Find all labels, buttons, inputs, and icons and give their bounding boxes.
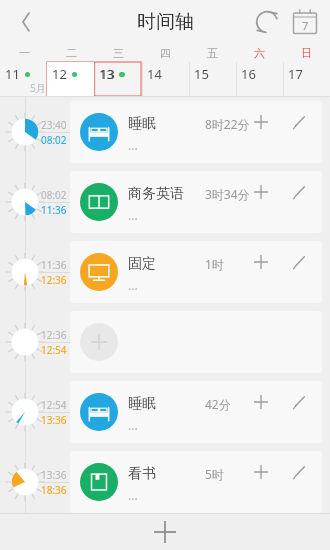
button[interactable]: 17 [283, 62, 330, 96]
button[interactable]: Add [248, 389, 274, 415]
staticText: 15 [194, 65, 209, 83]
button[interactable]: 睡眠 [70, 381, 322, 443]
staticText: 5时 [205, 466, 224, 482]
staticText: 日 [301, 46, 312, 60]
staticText: 12 [53, 65, 68, 83]
staticText: 12:36 [41, 328, 67, 342]
button[interactable]: Add [248, 249, 274, 275]
staticText: 一 [19, 46, 30, 60]
staticText: 23:40 [41, 118, 67, 132]
button[interactable]: 14 [142, 62, 189, 96]
staticText: 固定 [128, 255, 156, 273]
button[interactable]: 商务英语 [70, 171, 322, 233]
button[interactable] [70, 311, 322, 373]
staticText: 08:02 [41, 188, 67, 202]
staticText: 8时22分 [205, 116, 250, 132]
staticText: 18:36 [41, 483, 67, 497]
button[interactable]: 12 [48, 62, 95, 96]
staticText: 42分 [205, 396, 231, 412]
staticText: 三 [113, 46, 124, 60]
staticText: 13:36 [41, 413, 67, 427]
staticText: 商务英语 [128, 185, 184, 203]
staticText: ... [128, 487, 138, 503]
staticText: 看书 [128, 465, 156, 483]
staticText: 08:02 [41, 133, 67, 147]
button[interactable]: Add [248, 179, 274, 205]
button[interactable]: 看书 [70, 451, 322, 513]
staticText: ... [128, 137, 138, 153]
button[interactable]: 11 [0, 62, 48, 96]
button[interactable]: Add entry [0, 513, 330, 550]
button[interactable]: Add [248, 109, 274, 135]
staticText: 睡眠 [128, 395, 156, 413]
staticText: 1时 [205, 256, 224, 272]
button[interactable]: 固定 [70, 241, 322, 303]
button[interactable]: Calendar [286, 3, 324, 41]
staticText: 3时34分 [205, 186, 250, 202]
button[interactable]: 16 [236, 62, 283, 96]
staticText: 16 [241, 65, 256, 83]
staticText: 六 [254, 46, 265, 60]
staticText: 13 [99, 65, 114, 83]
button[interactable]: ... [70, 521, 322, 546]
button[interactable]: Edit [286, 389, 312, 415]
staticText: 睡眠 [128, 115, 156, 133]
button[interactable]: Back [8, 4, 44, 40]
staticText: 17 [288, 65, 303, 83]
button[interactable]: Edit [286, 249, 312, 275]
staticText: 12:54 [41, 343, 67, 357]
button[interactable]: 睡眠 [70, 101, 322, 163]
button[interactable]: Edit [286, 459, 312, 485]
staticText: ... [128, 207, 138, 223]
staticText: 12 [52, 65, 67, 83]
button[interactable]: Edit [286, 109, 312, 135]
staticText: 14 [147, 65, 162, 83]
staticText: 11:36 [41, 203, 67, 217]
staticText: 二 [66, 46, 77, 60]
button[interactable]: 13 [95, 62, 142, 96]
staticText: 13:36 [41, 468, 67, 482]
staticText: ... [128, 277, 138, 293]
staticText: 11 [5, 65, 20, 83]
staticText: 五 [207, 46, 218, 60]
button[interactable]: Sync [248, 3, 286, 41]
staticText: 12:36 [41, 273, 67, 287]
staticText: ... [128, 417, 138, 433]
staticText: 11:36 [41, 258, 67, 272]
staticText: 5月 [30, 81, 46, 95]
staticText: 四 [160, 46, 171, 60]
staticText: 12:54 [41, 398, 67, 412]
button[interactable]: Edit [286, 179, 312, 205]
staticText: 7 [302, 18, 309, 33]
staticText: 13 [100, 65, 115, 83]
staticText: 时间轴 [137, 10, 194, 34]
button[interactable]: 15 [189, 62, 236, 96]
button[interactable]: Add [248, 459, 274, 485]
